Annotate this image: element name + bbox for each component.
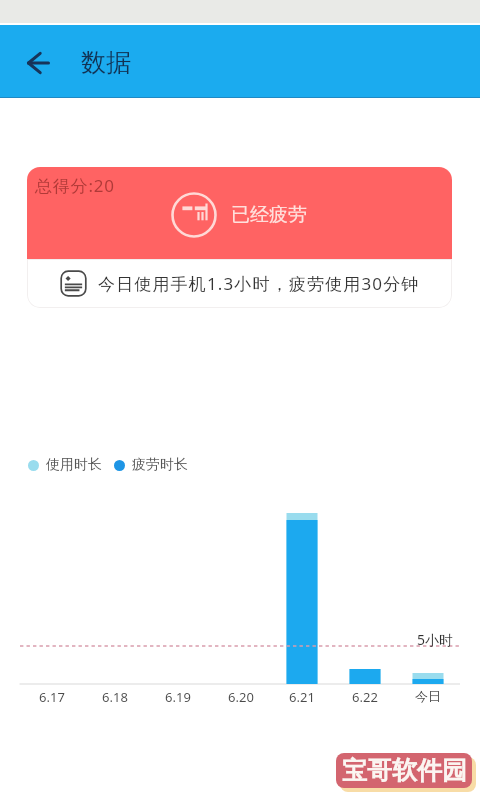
- staticText: 疲劳时长: [132, 456, 188, 474]
- staticText: 6.21: [289, 688, 315, 706]
- button[interactable]: 总得分:20: [27, 167, 452, 259]
- staticText: 6.19: [165, 688, 191, 706]
- button[interactable]: Back: [20, 43, 60, 83]
- staticText: 今日使用手机1.3小时，疲劳使用30分钟: [98, 272, 420, 295]
- staticText: 已经疲劳: [231, 203, 307, 227]
- staticText: 6.18: [102, 688, 128, 706]
- staticText: 5小时: [417, 630, 454, 649]
- staticText: 6.17: [39, 688, 65, 706]
- staticText: 6.22: [352, 688, 378, 706]
- staticText: 总得分:20: [35, 174, 115, 197]
- staticText: 6.20: [228, 688, 254, 706]
- button[interactable]: 今日使用手机1.3小时，疲劳使用30分钟: [27, 259, 452, 308]
- staticText: 今日: [415, 688, 441, 704]
- staticText: 数据: [81, 47, 131, 78]
- staticText: 使用时长: [46, 456, 102, 474]
- staticText: 宝哥软件园: [342, 755, 467, 786]
